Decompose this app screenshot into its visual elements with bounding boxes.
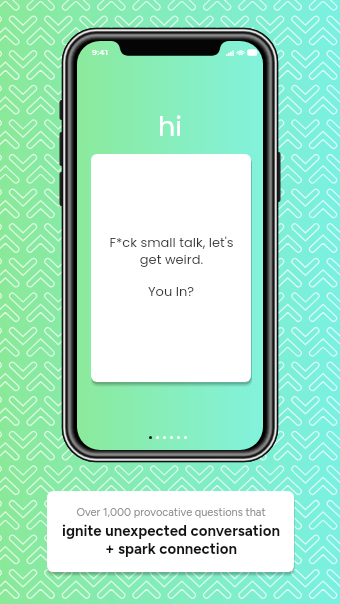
staticText: F*ck small talk, let's get weird. [109, 233, 234, 269]
button[interactable]: Page 3 [163, 436, 166, 439]
staticText: You In? [148, 282, 195, 300]
button[interactable]: F*ck small talk, let's get weird. [91, 154, 251, 382]
staticText: ignite unexpected conversation + spark c… [62, 522, 280, 558]
button[interactable]: Page 1 [149, 436, 152, 439]
staticText: hi [158, 108, 182, 146]
button[interactable]: Over 1,000 provocative questions that [47, 491, 294, 572]
button[interactable]: Page 4 [170, 436, 173, 439]
button[interactable]: Page 5 [177, 436, 180, 439]
staticText: Over 1,000 provocative questions that [76, 506, 266, 519]
button[interactable]: Page 6 [184, 436, 187, 439]
button[interactable]: Page 2 [156, 436, 159, 439]
staticText: 9:41 [92, 47, 109, 57]
